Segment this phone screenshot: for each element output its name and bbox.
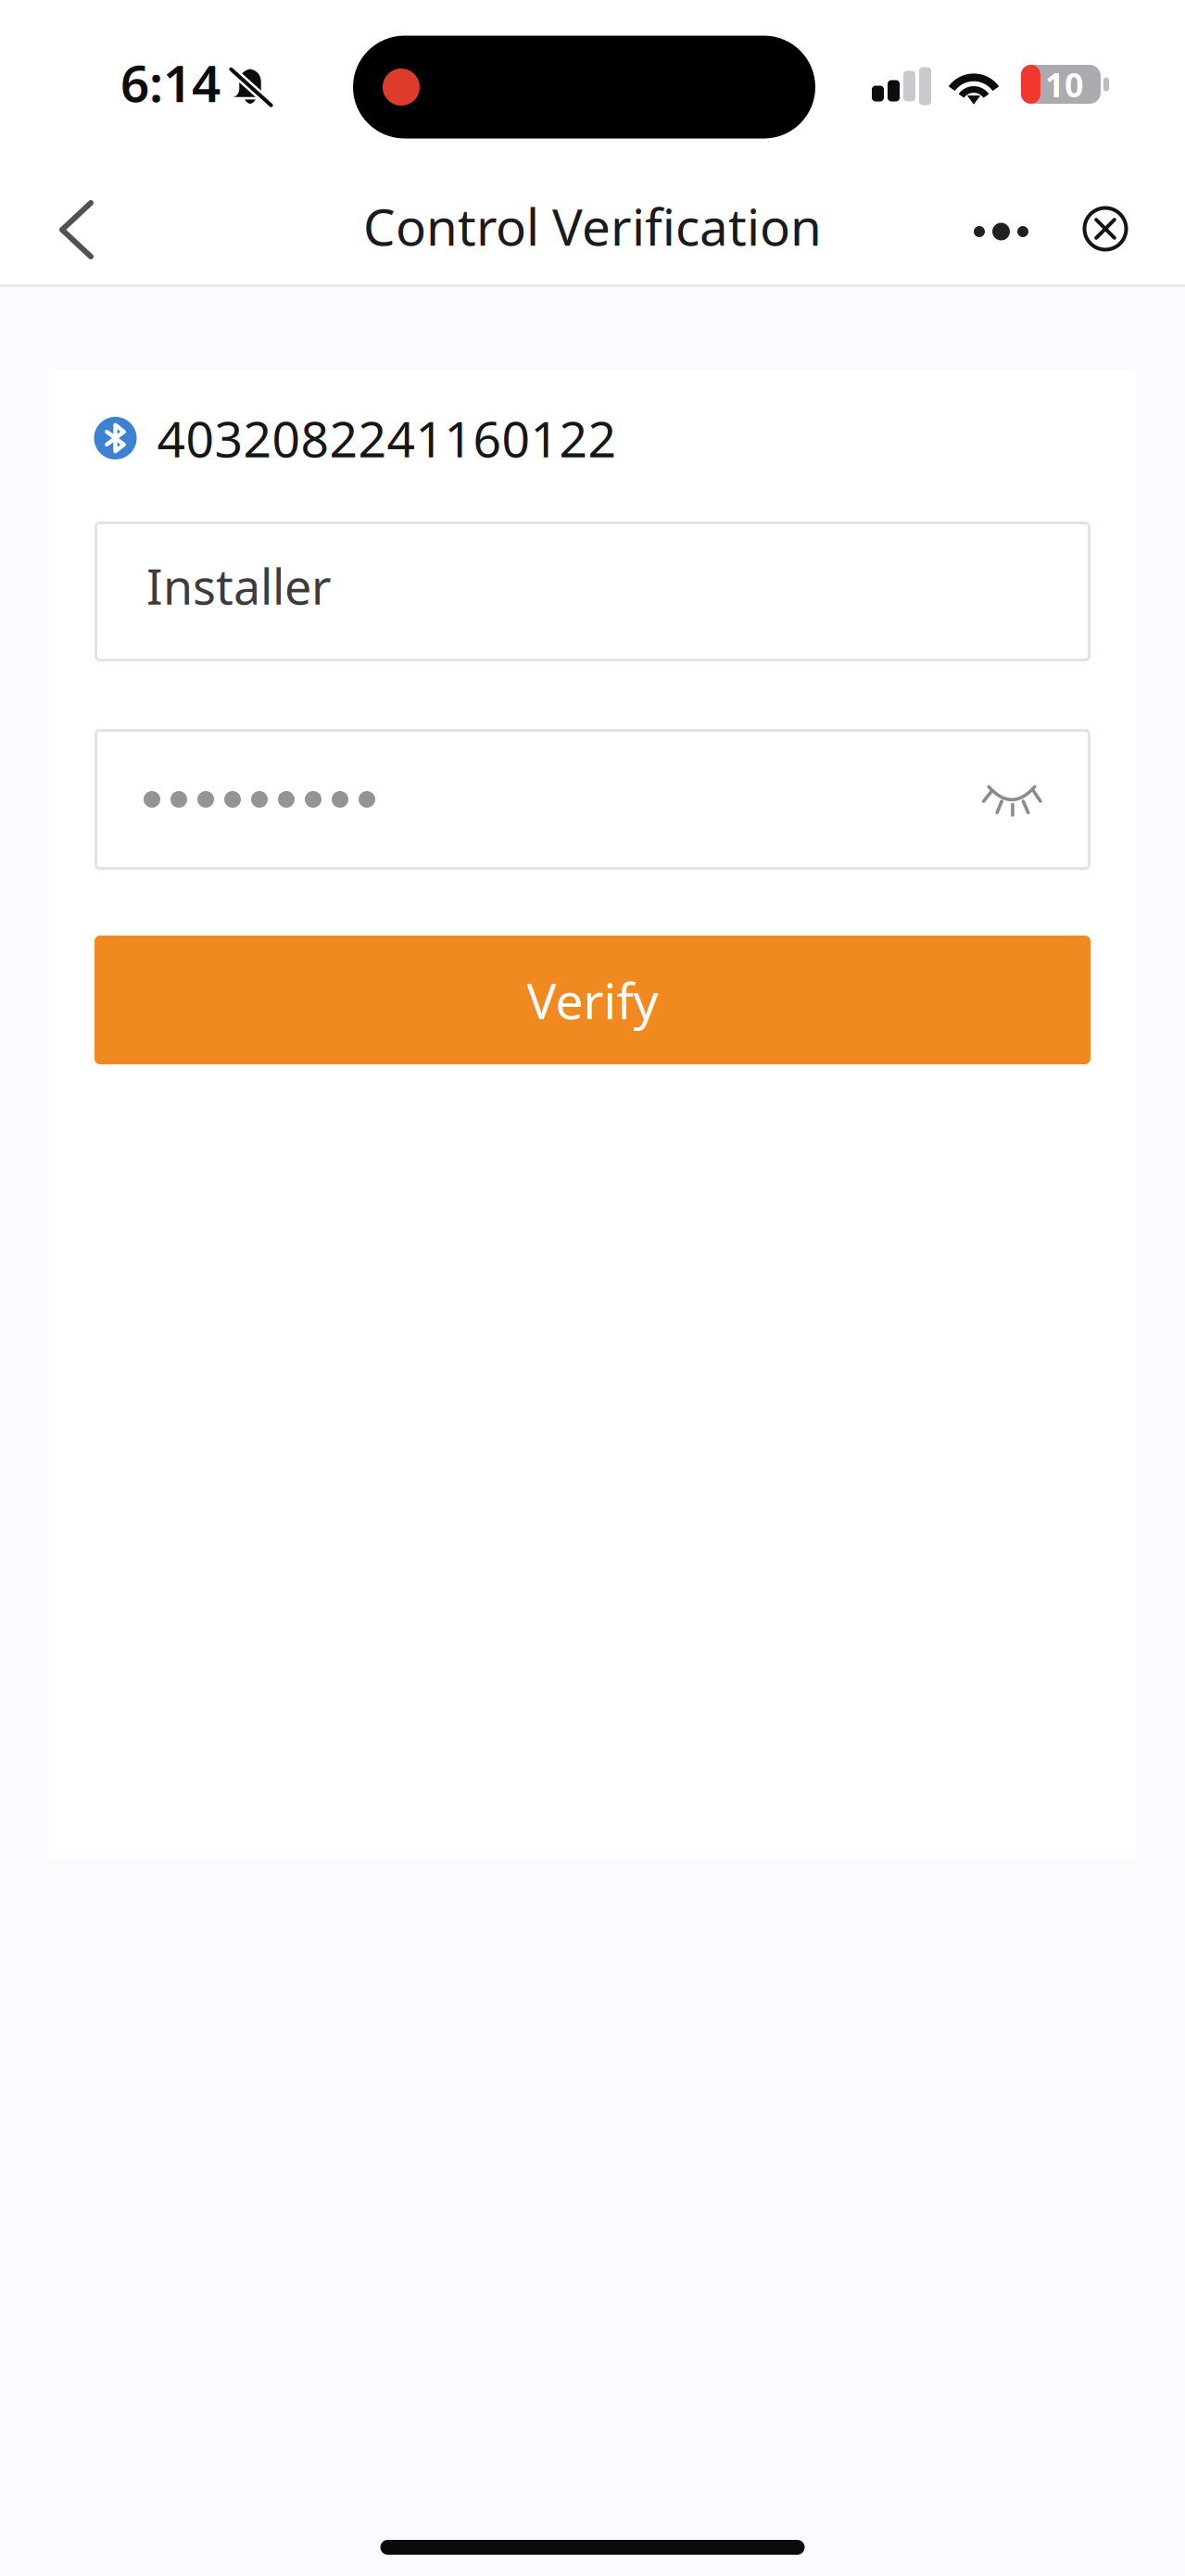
button[interactable]: More options: [948, 165, 1054, 287]
button[interactable]: Back: [0, 165, 148, 287]
staticText: Verify: [527, 967, 658, 1033]
staticText: Control Verification: [363, 192, 822, 260]
staticText: 6:14: [120, 49, 221, 116]
button[interactable]: Verify: [95, 936, 1090, 1064]
staticText: Installer: [146, 554, 331, 618]
staticText: 10: [1045, 62, 1084, 106]
button[interactable]: Password: [95, 729, 1090, 870]
staticText: 4032082241160122: [157, 405, 617, 471]
button[interactable]: Show password: [950, 729, 1090, 870]
button[interactable]: Close: [1054, 165, 1156, 287]
button[interactable]: Installer: [95, 521, 1090, 661]
